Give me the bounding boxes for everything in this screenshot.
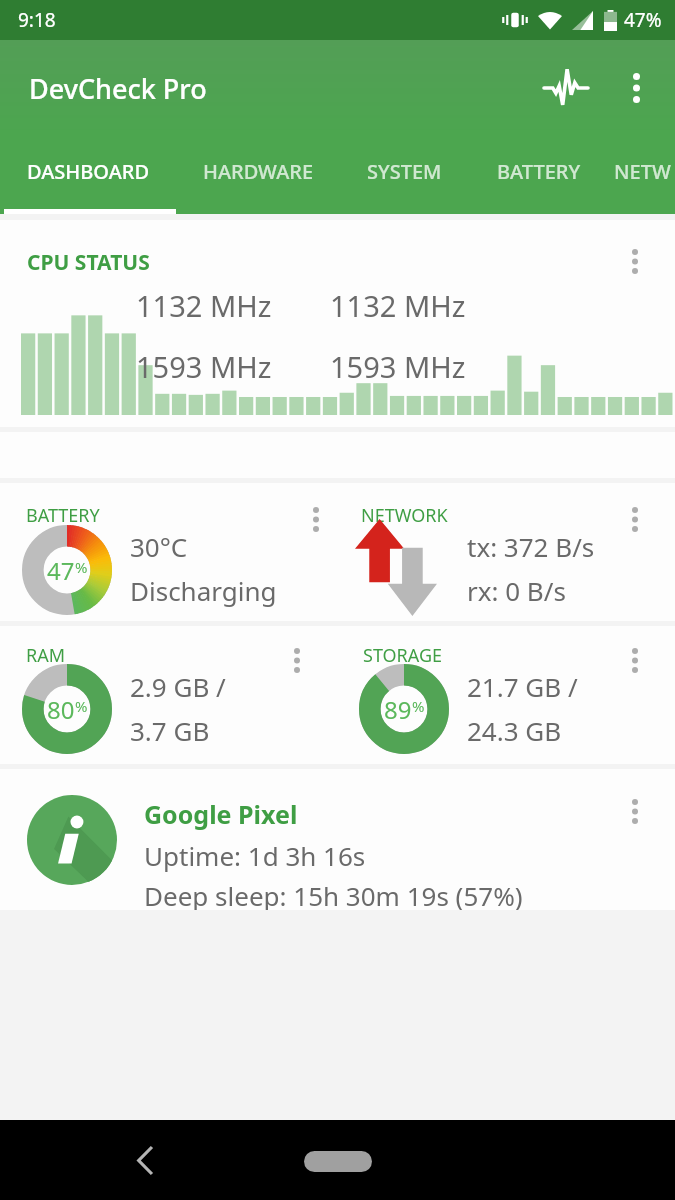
button[interactable]: STORAGE xyxy=(337,626,675,764)
button[interactable]: More options xyxy=(299,500,333,538)
staticText: 47% xyxy=(624,7,662,33)
staticText: 3.7 GB xyxy=(130,713,210,748)
button[interactable]: RAM xyxy=(0,626,337,764)
staticText: 1593 MHz xyxy=(136,347,272,386)
staticText: RAM xyxy=(26,643,66,668)
button[interactable]: SYSTEM xyxy=(340,136,468,214)
button[interactable]: NETWORK xyxy=(337,483,675,621)
button[interactable]: NETW xyxy=(610,136,675,214)
staticText: HARDWARE xyxy=(203,158,314,185)
button[interactable]: Device info xyxy=(0,769,675,910)
staticText: BATTERY xyxy=(497,158,581,185)
button[interactable]: More options xyxy=(618,641,652,679)
staticText: NETWORK xyxy=(361,503,448,528)
staticText: 21.7 GB / xyxy=(467,669,578,704)
staticText: rx: 0 B/s xyxy=(467,573,566,608)
staticText: % xyxy=(75,696,88,716)
staticText: 47 xyxy=(47,554,75,587)
staticText: CPU STATUS xyxy=(27,248,150,277)
staticText: 89 xyxy=(384,693,412,726)
staticText: Uptime: 1d 3h 16s xyxy=(144,838,366,873)
staticText: 30°C xyxy=(130,529,188,564)
staticText: 1132 MHz xyxy=(136,286,272,325)
staticText: BATTERY xyxy=(26,503,100,528)
staticText: tx: 372 B/s xyxy=(467,529,595,564)
staticText: Deep sleep: 15h 30m 19s (57%) xyxy=(144,878,523,910)
staticText: SYSTEM xyxy=(367,158,442,185)
button[interactable]: Monitor xyxy=(539,61,593,115)
button[interactable]: More options xyxy=(618,500,652,538)
button[interactable]: HARDWARE xyxy=(176,136,340,214)
staticText: 2.9 GB / xyxy=(130,669,226,704)
button[interactable]: RAM xyxy=(0,626,675,764)
staticText: NETW xyxy=(614,158,671,185)
staticText: Discharging xyxy=(130,573,277,608)
button[interactable]: Home xyxy=(304,1151,372,1172)
staticText: DevCheck Pro xyxy=(29,70,207,107)
button[interactable]: BATTERY xyxy=(0,483,337,621)
button[interactable]: Device info xyxy=(27,795,117,885)
staticText: DASHBOARD xyxy=(27,158,149,185)
button[interactable]: BATTERY xyxy=(468,136,610,214)
button[interactable]: CPU STATUS xyxy=(0,220,675,427)
button[interactable]: More options xyxy=(618,242,652,280)
button[interactable]: Back xyxy=(120,1135,170,1185)
staticText: 1593 MHz xyxy=(330,347,466,386)
button[interactable]: More options xyxy=(280,641,314,679)
staticText: 80 xyxy=(47,693,75,726)
staticText: % xyxy=(412,696,425,716)
staticText: STORAGE xyxy=(363,643,443,668)
staticText: Google Pixel xyxy=(144,797,298,831)
button[interactable]: More options xyxy=(618,792,652,830)
button[interactable]: DASHBOARD xyxy=(0,136,176,214)
staticText: 1132 MHz xyxy=(330,286,466,325)
button[interactable]: More options xyxy=(611,63,661,113)
staticText: 24.3 GB xyxy=(467,713,562,748)
staticText: % xyxy=(75,557,88,577)
button[interactable]: BATTERY xyxy=(0,483,675,621)
staticText: 9:18 xyxy=(18,7,56,33)
